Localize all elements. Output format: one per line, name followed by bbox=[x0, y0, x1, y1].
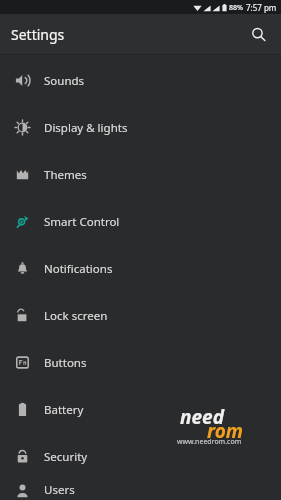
staticText: Security bbox=[44, 449, 88, 465]
staticText: Themes bbox=[44, 167, 87, 183]
button[interactable]: Buttons bbox=[0, 339, 281, 386]
staticText: 7:57 pm bbox=[246, 2, 277, 13]
staticText: need bbox=[180, 404, 224, 430]
button[interactable]: Search bbox=[243, 19, 273, 49]
staticText: rom bbox=[207, 418, 243, 444]
button[interactable]: Notifications bbox=[0, 245, 281, 292]
staticText: Smart Control bbox=[44, 214, 120, 230]
button[interactable]: Lock screen bbox=[0, 292, 281, 339]
staticText: Users bbox=[44, 482, 75, 498]
button[interactable]: Display & lights bbox=[0, 104, 281, 151]
button[interactable]: Sounds bbox=[0, 57, 281, 104]
staticText: 88% bbox=[229, 3, 243, 13]
staticText: Notifications bbox=[44, 261, 113, 277]
button[interactable]: Users bbox=[0, 480, 281, 500]
staticText: www.needrom.com bbox=[177, 437, 242, 447]
staticText: Buttons bbox=[44, 355, 87, 371]
staticText: Sounds bbox=[44, 73, 85, 89]
staticText: Battery bbox=[44, 402, 84, 418]
button[interactable]: Battery bbox=[0, 386, 281, 433]
button[interactable]: Themes bbox=[0, 151, 281, 198]
button[interactable]: Smart Control bbox=[0, 198, 281, 245]
button[interactable]: Security bbox=[0, 433, 281, 480]
staticText: Settings bbox=[11, 25, 65, 44]
staticText: Lock screen bbox=[44, 308, 108, 324]
staticText: Display & lights bbox=[44, 120, 128, 136]
